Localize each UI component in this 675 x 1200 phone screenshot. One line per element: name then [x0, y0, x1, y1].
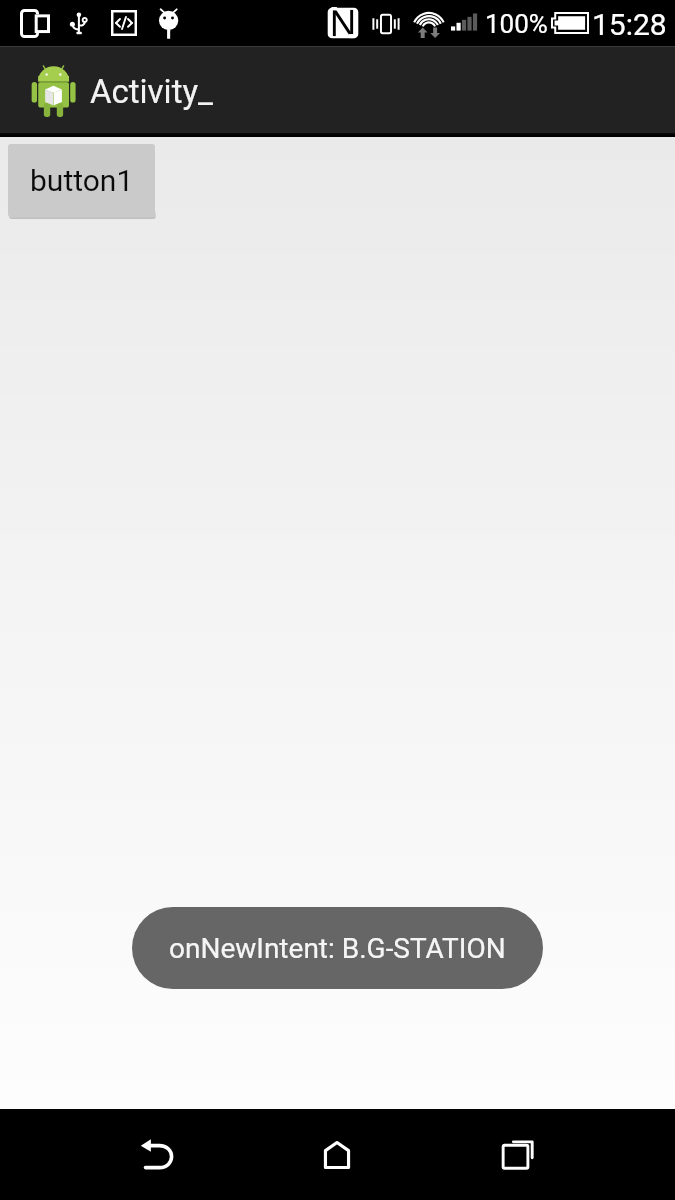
button[interactable]: Home [292, 1109, 382, 1200]
staticText: onNewIntent: B.G-STATION [169, 932, 506, 965]
button[interactable]: Recent apps [472, 1109, 562, 1200]
staticText: 100% [485, 9, 548, 39]
staticText: button1 [30, 163, 134, 198]
staticText: Activity_ [90, 72, 213, 111]
button[interactable]: button1 [8, 144, 155, 217]
button[interactable]: Back [112, 1109, 202, 1200]
staticText: 15:28 [592, 7, 667, 42]
